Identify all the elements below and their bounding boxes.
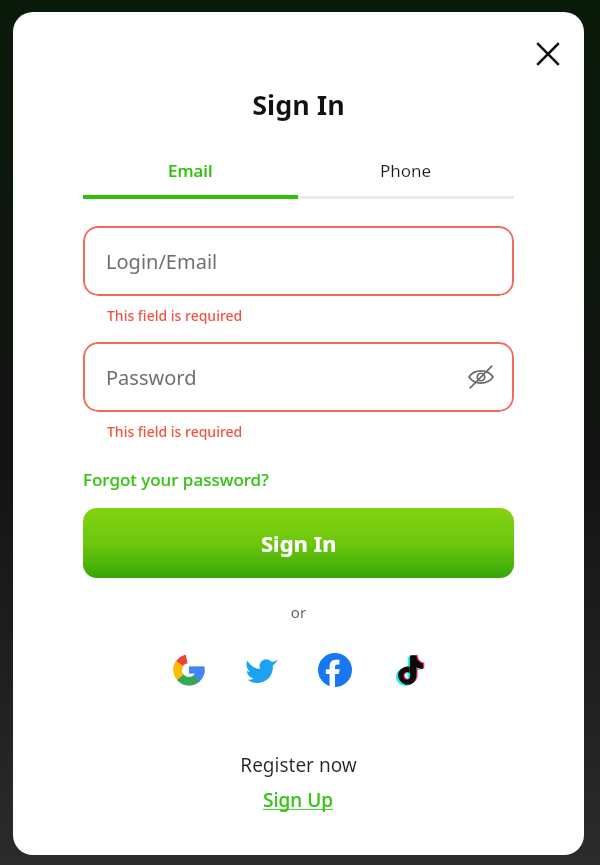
button[interactable]: Sign Up xyxy=(263,787,334,813)
staticText: or xyxy=(13,602,584,622)
button[interactable]: Password xyxy=(83,342,514,412)
button[interactable]: Sign In xyxy=(83,508,514,578)
button[interactable]: Sign in with Google xyxy=(163,644,215,696)
staticText: Sign In xyxy=(13,86,584,123)
staticText: Email xyxy=(168,159,213,182)
button[interactable]: Login/Email xyxy=(83,226,514,296)
button[interactable]: Email xyxy=(83,153,298,187)
button[interactable]: Close xyxy=(526,32,570,76)
staticText: This field is required xyxy=(107,422,243,441)
staticText: Phone xyxy=(380,159,432,182)
staticText: Password xyxy=(106,364,197,391)
staticText: Register now xyxy=(13,752,584,778)
button[interactable]: Phone xyxy=(298,153,514,187)
staticText: Forgot your password? xyxy=(83,468,269,491)
button[interactable]: Show password xyxy=(461,357,501,397)
button[interactable]: Sign in with TikTok xyxy=(382,644,434,696)
button[interactable]: Forgot your password? xyxy=(83,468,269,491)
button[interactable]: Sign in with Facebook xyxy=(309,644,361,696)
staticText: Sign In xyxy=(261,528,337,558)
button[interactable]: Sign in with Twitter xyxy=(236,644,288,696)
staticText: Sign Up xyxy=(263,787,334,813)
staticText: This field is required xyxy=(107,306,243,325)
staticText: Login/Email xyxy=(106,248,218,275)
